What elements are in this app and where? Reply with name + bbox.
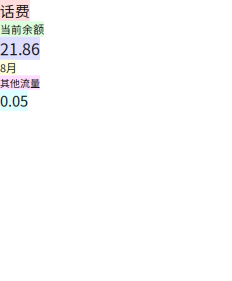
staticText: 当前余额 [0,21,44,37]
staticText: 21.86 [0,37,40,60]
staticText: 0.05 [0,90,28,111]
staticText: 其他流量 [0,75,40,90]
staticText: 8月 [0,60,17,75]
staticText: 话费 [0,0,30,21]
